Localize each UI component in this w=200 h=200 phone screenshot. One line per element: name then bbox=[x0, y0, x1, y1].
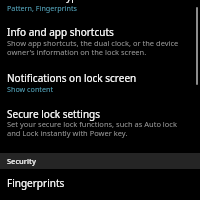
button[interactable]: Fingerprints bbox=[0, 169, 200, 200]
staticText: Fingerprints bbox=[7, 176, 65, 190]
staticText: Secure lock settings bbox=[7, 107, 100, 121]
button[interactable]: Notifications on lock screen bbox=[0, 65, 200, 100]
staticText: Show content bbox=[7, 84, 54, 94]
button[interactable]: Screen lock type bbox=[0, 0, 200, 21]
staticText: Set your secure lock functions, such as … bbox=[7, 119, 177, 138]
staticText: Pattern, Fingerprints bbox=[7, 3, 78, 13]
staticText: Show app shortcuts, the dual clock, or t… bbox=[7, 38, 179, 57]
staticText: Security bbox=[7, 156, 36, 166]
staticText: Info and app shortcuts bbox=[7, 25, 114, 39]
staticText: Notifications on lock screen bbox=[7, 71, 137, 85]
button[interactable]: Secure lock settings bbox=[0, 100, 200, 147]
staticText: Screen lock type bbox=[7, 0, 84, 3]
button[interactable]: Info and app shortcuts bbox=[0, 21, 200, 65]
